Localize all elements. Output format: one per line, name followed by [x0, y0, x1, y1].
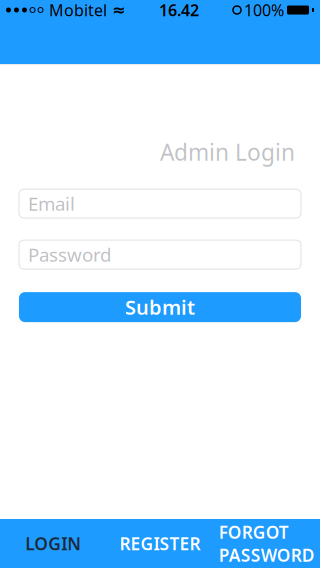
button[interactable]: Submit: [19, 292, 301, 322]
button[interactable]: Password: [19, 240, 301, 269]
button[interactable]: FORGOT PASSWORD: [213, 519, 320, 568]
button[interactable]: REGISTER: [107, 519, 213, 568]
staticText: Submit: [125, 294, 195, 320]
staticText: LOGIN: [25, 532, 81, 555]
staticText: Admin Login: [160, 137, 295, 167]
staticText: 100%: [244, 0, 284, 21]
staticText: ≈: [112, 1, 125, 19]
button[interactable]: LOGIN: [0, 519, 107, 568]
button[interactable]: Email: [19, 189, 301, 218]
staticText: 16.42: [159, 0, 199, 21]
staticText: FORGOT PASSWORD: [219, 520, 315, 566]
staticText: REGISTER: [119, 532, 200, 555]
staticText: Mobitel: [49, 0, 107, 21]
staticText: Email: [28, 191, 75, 216]
staticText: Password: [28, 242, 111, 267]
